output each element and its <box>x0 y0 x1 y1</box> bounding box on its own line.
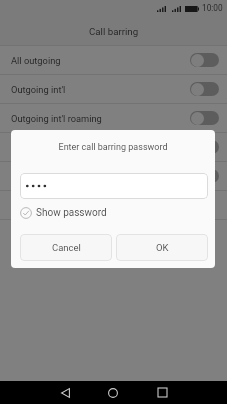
button[interactable]: Outgoing int'l roaming <box>0 104 227 132</box>
button[interactable]: Home <box>95 381 131 404</box>
staticText: All incoming <box>11 142 63 153</box>
button[interactable]: Toggle <box>190 82 219 96</box>
staticText: Cancel all <box>11 200 52 211</box>
staticText: Outgoing int'l <box>11 84 66 95</box>
button[interactable]: Cancel <box>20 234 112 261</box>
button[interactable]: Show password <box>20 203 107 223</box>
button[interactable]: Back <box>47 381 83 404</box>
button[interactable]: Cancel all <box>0 191 227 219</box>
staticText: Cancel <box>52 242 81 253</box>
button[interactable]: Toggle <box>190 111 219 125</box>
staticText: OK <box>156 242 169 253</box>
button[interactable]: Toggle <box>190 140 219 154</box>
button[interactable]: All outgoing <box>0 46 227 74</box>
button[interactable]: Recent apps <box>144 381 180 404</box>
button[interactable]: Toggle <box>190 169 219 183</box>
button[interactable]: Incoming when roaming <box>0 162 227 190</box>
staticText: Incoming when roaming <box>11 171 111 182</box>
button[interactable]: OK <box>116 234 208 261</box>
button[interactable]: Toggle <box>190 53 219 67</box>
button[interactable]: Password input <box>20 173 208 199</box>
staticText: Outgoing int'l roaming <box>11 113 102 124</box>
staticText: All outgoing <box>11 55 61 66</box>
staticText: Show password <box>36 207 107 219</box>
staticText: Enter call barring password <box>11 142 215 153</box>
staticText: 10:00 <box>202 3 223 13</box>
staticText: Call barring <box>89 26 139 37</box>
button[interactable]: Outgoing int'l <box>0 75 227 103</box>
button[interactable]: All incoming <box>0 133 227 161</box>
